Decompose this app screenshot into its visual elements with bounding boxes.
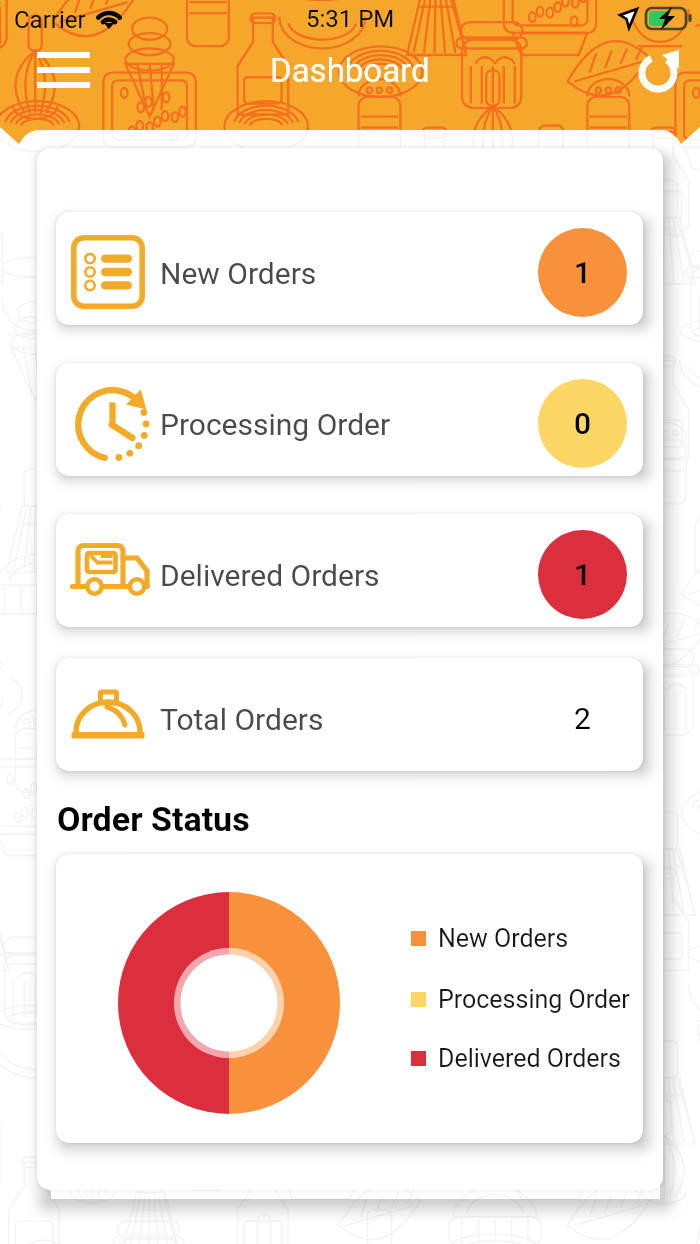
button[interactable]: Total Orders <box>56 658 643 771</box>
staticText: Total Orders <box>160 702 324 737</box>
staticText: Order Status <box>57 799 250 839</box>
staticText: 5:31 PM <box>306 5 395 33</box>
staticText: New Orders <box>160 256 317 291</box>
staticText: 2 <box>574 701 591 736</box>
button[interactable]: Processing Order <box>56 363 643 476</box>
button[interactable]: Menu <box>27 42 100 98</box>
staticText: 1 <box>574 557 592 592</box>
staticText: Delivered Orders <box>438 1044 621 1073</box>
staticText: 0 <box>574 406 592 441</box>
staticText: 1 <box>574 255 592 290</box>
staticText: Delivered Orders <box>160 558 380 593</box>
staticText: Carrier <box>14 6 86 34</box>
button[interactable]: Refresh <box>632 46 684 98</box>
staticText: Dashboard <box>270 51 430 90</box>
staticText: Processing Order <box>160 407 391 442</box>
staticText: Processing Order <box>438 985 630 1014</box>
button[interactable]: Delivered Orders <box>56 514 643 627</box>
staticText: New Orders <box>438 924 569 953</box>
button[interactable]: New Orders <box>56 212 643 325</box>
